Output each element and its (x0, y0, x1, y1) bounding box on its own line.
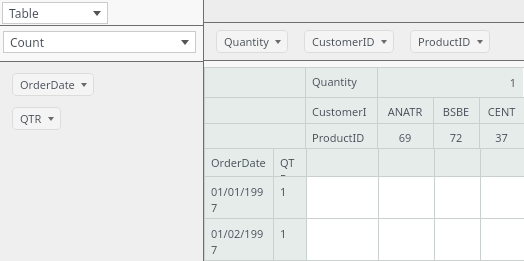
staticText: Quantity (312, 74, 370, 89)
staticText: 1 (280, 226, 299, 241)
staticText: Count (10, 34, 45, 50)
staticText: CENTC (486, 104, 517, 123)
staticText: 01/01/1997 00:00:00 (211, 184, 266, 218)
staticText: 69 (384, 130, 426, 145)
button[interactable]: ProductID (410, 30, 490, 53)
staticText: Quantity (224, 34, 269, 49)
staticText: CustomerID (312, 34, 375, 49)
staticText: 1 (384, 75, 516, 90)
button[interactable]: CustomerID (304, 30, 394, 53)
staticText: ProductID (418, 34, 471, 49)
staticText: ProductID (312, 130, 370, 145)
button[interactable]: Table (2, 2, 108, 24)
button[interactable]: Count (3, 31, 196, 53)
staticText: OrderDate (20, 77, 75, 92)
staticText: 72 (440, 130, 472, 145)
staticText: 37 (486, 130, 517, 145)
staticText: ANATR (384, 104, 426, 119)
staticText: 01/02/1997 00:00:00 (211, 226, 266, 260)
button[interactable]: QTR (12, 107, 61, 130)
button[interactable]: OrderDate (12, 73, 94, 96)
staticText: BSBEV (440, 104, 472, 123)
staticText: CustomerID (312, 104, 370, 123)
staticText: Table (9, 5, 39, 21)
staticText: QTR (20, 111, 42, 126)
button[interactable]: Quantity (216, 30, 288, 53)
staticText: OrderDate (211, 155, 266, 170)
staticText: 1 (280, 184, 299, 199)
staticText: QTR (280, 155, 299, 176)
